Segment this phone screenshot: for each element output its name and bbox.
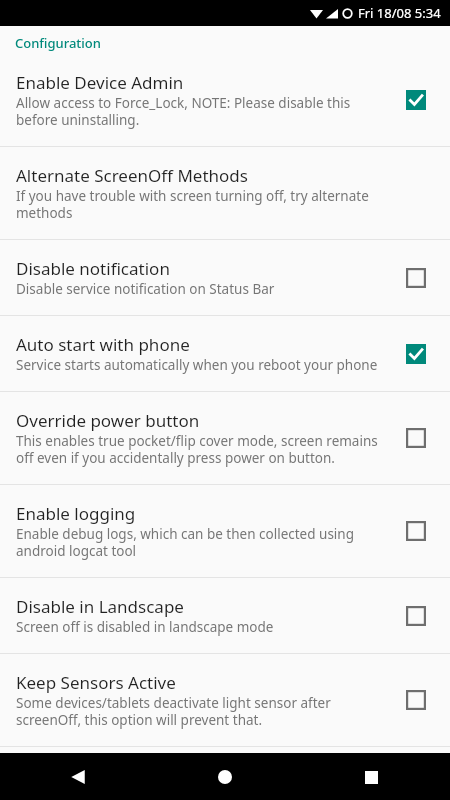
button[interactable]: Disable notification [0,240,450,315]
button[interactable]: Auto start with phone [0,316,450,391]
staticText: If you have trouble with screen turning … [16,187,424,222]
staticText: Alternate ScreenOff Methods [16,164,248,187]
staticText: Auto start with phone [16,333,190,356]
staticText: Fri 18/08 5:34 [358,4,441,22]
staticText: Configuration [15,34,101,52]
button[interactable]: Enable Device Admin [0,54,450,146]
staticText: Enable debug logs, which can be then col… [16,525,388,560]
button[interactable]: Back [60,759,96,795]
button[interactable]: Enable logging checkbox [398,513,434,549]
button[interactable]: Disable notification checkbox [398,260,434,296]
button[interactable]: Alternate ScreenOff Methods [0,147,450,239]
staticText: Disable service notification on Status B… [16,280,275,298]
staticText: Service starts automatically when you re… [16,356,378,374]
button[interactable]: Disable in Landscape [0,578,450,653]
staticText: Enable Device Admin [16,71,184,94]
staticText: Some devices/tablets deactivate light se… [16,694,388,729]
staticText: Allow access to Force_Lock, NOTE: Please… [16,94,388,129]
button[interactable]: Override power button [0,392,450,484]
button[interactable]: Home [207,759,243,795]
staticText: Override power button [16,409,200,432]
staticText: Disable notification [16,257,170,280]
staticText: This enables true pocket/flip cover mode… [16,432,388,467]
button[interactable]: Keep Sensors Active checkbox [398,682,434,718]
button[interactable]: Enable Device Admin checkbox [398,82,434,118]
button[interactable]: Keep Sensors Active [0,654,450,746]
button[interactable]: Disable in Landscape checkbox [398,598,434,634]
button[interactable]: Auto start with phone checkbox [398,336,434,372]
staticText: Keep Sensors Active [16,671,176,694]
staticText: Screen off is disabled in landscape mode [16,618,274,636]
button[interactable]: Enable logging [0,485,450,577]
button[interactable]: Recent apps [353,759,389,795]
staticText: Disable in Landscape [16,595,184,618]
staticText: Enable logging [16,502,136,525]
button[interactable]: Override power button checkbox [398,420,434,456]
